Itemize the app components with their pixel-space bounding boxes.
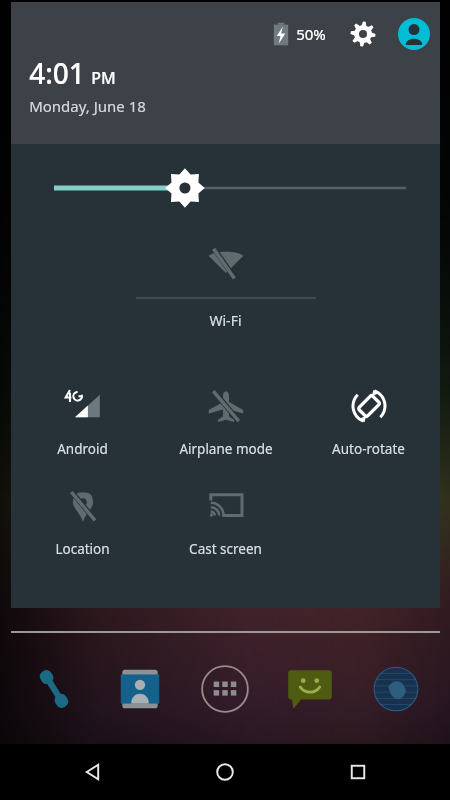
staticText: Wi-Fi [209, 311, 242, 330]
button[interactable]: Android [11, 374, 154, 458]
button[interactable]: Home [185, 744, 265, 800]
staticText: Monday, June 18 [29, 96, 146, 116]
button[interactable]: User profile [398, 18, 430, 50]
button[interactable]: Apps [194, 658, 256, 720]
button[interactable]: Phone [23, 658, 85, 720]
staticText: Auto-rotate [332, 440, 405, 458]
staticText: Airplane mode [179, 440, 273, 458]
staticText: Android [57, 440, 108, 458]
staticText: PM [91, 67, 116, 89]
button[interactable]: Airplane mode [154, 374, 297, 458]
button[interactable]: Wi-Fi [11, 232, 440, 352]
button[interactable]: Contacts [109, 658, 171, 720]
button[interactable]: Cast screen [154, 474, 297, 558]
button[interactable]: Location [11, 474, 154, 558]
button[interactable]: Back [53, 744, 133, 800]
button[interactable]: Auto-rotate [297, 374, 440, 458]
staticText: Location [55, 540, 110, 558]
button[interactable]: Settings [348, 19, 378, 49]
button[interactable]: Brightness [11, 168, 440, 208]
button[interactable]: Messaging [279, 658, 341, 720]
staticText: Cast screen [189, 540, 262, 558]
staticText: 50% [296, 24, 326, 44]
staticText: 4:01 [29, 54, 85, 92]
button[interactable]: Browser [365, 658, 427, 720]
button[interactable]: Recents [318, 744, 398, 800]
